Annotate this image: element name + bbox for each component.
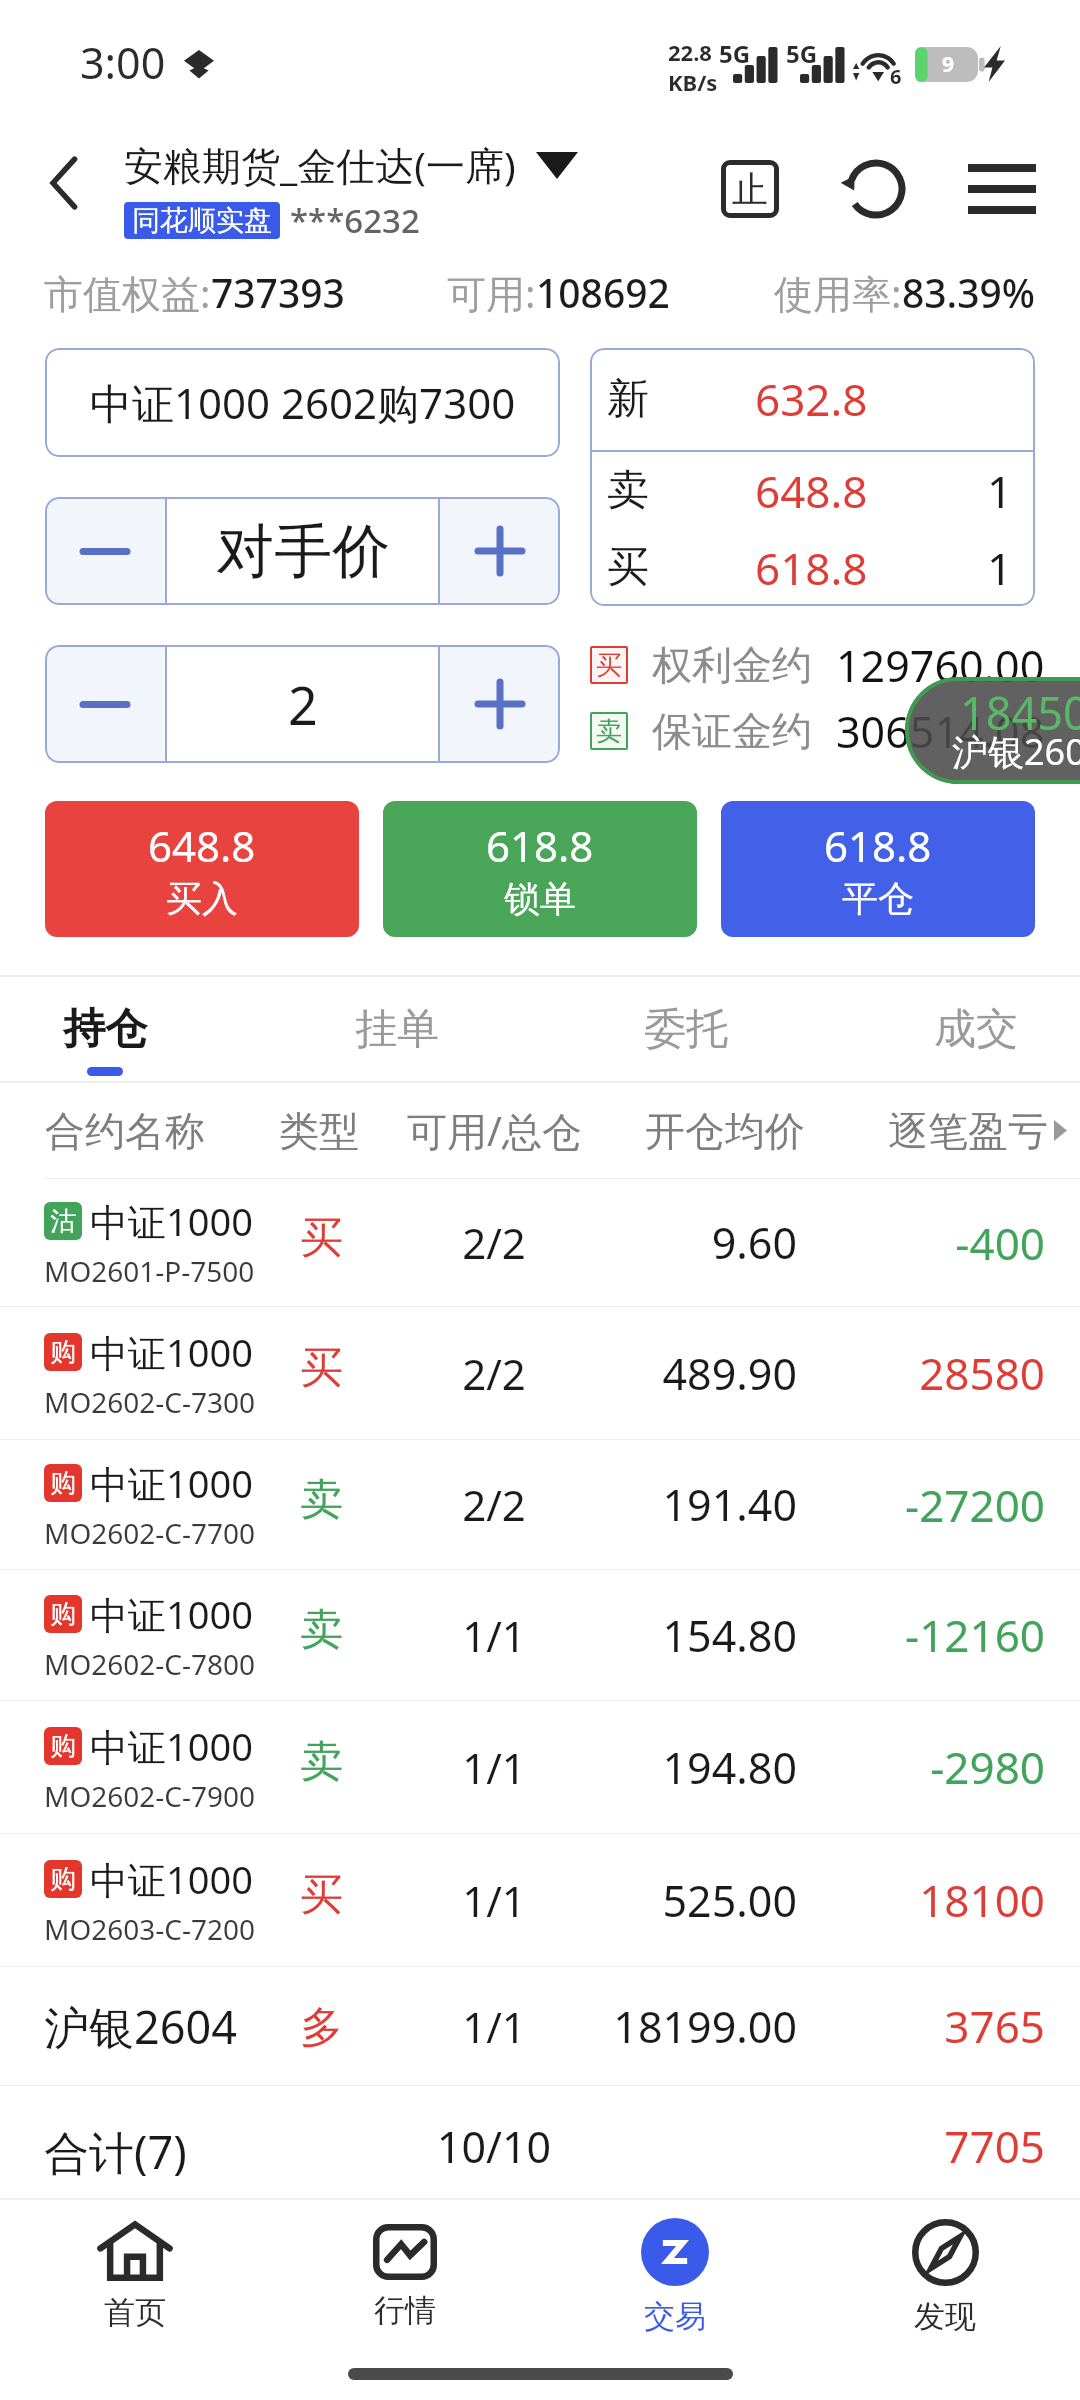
staticText: 购 (50, 1467, 76, 1500)
staticText: 10/10 (408, 2117, 580, 2176)
staticText: 安粮期货_金仕达(一席) (124, 138, 516, 191)
staticText: 沪银2604 (952, 727, 1080, 776)
button[interactable]: 挂单 (277, 977, 517, 1081)
staticText: 中证1000 (90, 1588, 253, 1640)
staticText: 154.80 (580, 1606, 797, 1665)
button[interactable]: 交易 (540, 2200, 810, 2348)
staticText: 止 (732, 167, 768, 212)
button[interactable]: 2 (167, 645, 438, 763)
staticText: 新 (607, 373, 649, 426)
button[interactable]: 委托 (566, 977, 806, 1081)
button[interactable]: Menu (954, 141, 1050, 237)
staticText: 交易 (644, 2297, 706, 2336)
staticText: 可用/总仓 (407, 1103, 582, 1158)
staticText: 618.8 (486, 817, 594, 874)
button[interactable]: Back (26, 144, 104, 222)
staticText: 648.8 (148, 817, 256, 874)
staticText: 首页 (104, 2293, 166, 2332)
staticText: 1/1 (408, 1607, 580, 1664)
button[interactable]: 618.8 (383, 801, 697, 937)
staticText: 卖 (300, 1735, 343, 1789)
staticText: 合约名称 (45, 1106, 205, 1156)
staticText: 7705 (797, 2116, 1045, 2176)
button[interactable]: 止损单 (702, 141, 798, 237)
staticText: 18199.00 (580, 1997, 797, 2056)
staticText: 类型 (279, 1106, 359, 1156)
staticText: 买 (596, 649, 622, 682)
staticText: 开仓均价 (645, 1106, 805, 1156)
button[interactable]: Decrease (45, 497, 165, 605)
button[interactable]: 发现 (810, 2200, 1080, 2348)
button[interactable]: Increase (440, 497, 560, 605)
staticText: 2/2 (408, 1476, 580, 1533)
staticText: MO2602-C-7800 (44, 1645, 256, 1683)
staticText: 1 (987, 461, 1013, 521)
staticText: MO2601-P-7500 (44, 1252, 255, 1290)
staticText: MO2603-C-7200 (44, 1910, 256, 1948)
button[interactable]: Increase (440, 645, 560, 763)
staticText: 可用: (447, 266, 536, 319)
staticText: 购 (50, 1730, 76, 1763)
staticText: 市值权益: (44, 266, 211, 319)
staticText: 18100 (797, 1870, 1045, 1930)
staticText: 成交 (934, 1003, 1018, 1056)
button[interactable]: Refresh (828, 141, 924, 237)
staticText: 委托 (644, 1003, 728, 1056)
staticText: 卖 (300, 1603, 343, 1657)
staticText: 9 (942, 50, 955, 79)
staticText: 618.8 (824, 817, 932, 874)
staticText: MO2602-C-7300 (44, 1383, 256, 1421)
staticText: 129760.00 (836, 636, 1045, 695)
button[interactable]: 购 (0, 1440, 1080, 1569)
staticText: 发现 (914, 2297, 976, 2336)
staticText: 1/1 (408, 1998, 580, 2055)
staticText: 卖 (607, 464, 649, 517)
staticText: 卖 (300, 1473, 343, 1527)
staticText: 逐笔盈亏 (888, 1106, 1048, 1156)
staticText: 中证1000 (90, 1720, 253, 1772)
staticText: 525.00 (580, 1871, 797, 1930)
button[interactable]: 购 (0, 1570, 1080, 1700)
staticText: KB/s (668, 67, 718, 97)
staticText: 保证金约 (652, 706, 812, 756)
staticText: 买 (607, 541, 649, 594)
staticText: 648.8 (755, 461, 868, 521)
staticText: 1 (987, 538, 1013, 598)
staticText: 同花顺实盘 (132, 203, 272, 238)
staticText: 中证1000 (90, 1326, 253, 1378)
button[interactable]: 618.8 (721, 801, 1035, 937)
staticText: 行情 (374, 2291, 436, 2330)
staticText: 737393 (211, 266, 345, 319)
button[interactable]: 持仓 (0, 977, 225, 1081)
button[interactable]: 中证1000 2602购7300 (45, 348, 560, 457)
staticText: 买 (300, 1868, 343, 1922)
button[interactable]: 成交 (856, 977, 1080, 1081)
staticText: MO2602-C-7900 (44, 1777, 256, 1815)
staticText: 沪银2604 (44, 1996, 237, 2057)
staticText: -12160 (797, 1605, 1045, 1665)
staticText: -27200 (797, 1475, 1045, 1535)
staticText: 多 (300, 2001, 343, 2055)
button[interactable]: 沽 (0, 1179, 1080, 1306)
staticText: 22.8 (668, 37, 712, 67)
staticText: 5G (719, 37, 751, 70)
staticText: 买 (300, 1341, 343, 1395)
staticText: 1/1 (408, 1739, 580, 1796)
button[interactable]: 购 (0, 1834, 1080, 1966)
button[interactable]: 首页 (0, 2200, 270, 2348)
button[interactable]: 沪银2604 (0, 1967, 1080, 2085)
button[interactable]: 行情 (270, 2200, 540, 2348)
staticText: 沽 (50, 1205, 76, 1238)
button[interactable]: 648.8 (45, 801, 359, 937)
button[interactable]: 购 (0, 1701, 1080, 1833)
staticText: MO2602-C-7700 (44, 1514, 256, 1552)
button[interactable]: 对手价 (167, 497, 438, 605)
staticText: 买入 (166, 876, 238, 921)
staticText: 618.8 (755, 538, 868, 598)
staticText: 使用率: (774, 266, 902, 319)
button[interactable]: 购 (0, 1307, 1080, 1439)
button[interactable]: Decrease (45, 645, 165, 763)
staticText: 2/2 (408, 1345, 580, 1402)
staticText: 28580 (797, 1343, 1045, 1403)
staticText: 买 (300, 1211, 343, 1265)
